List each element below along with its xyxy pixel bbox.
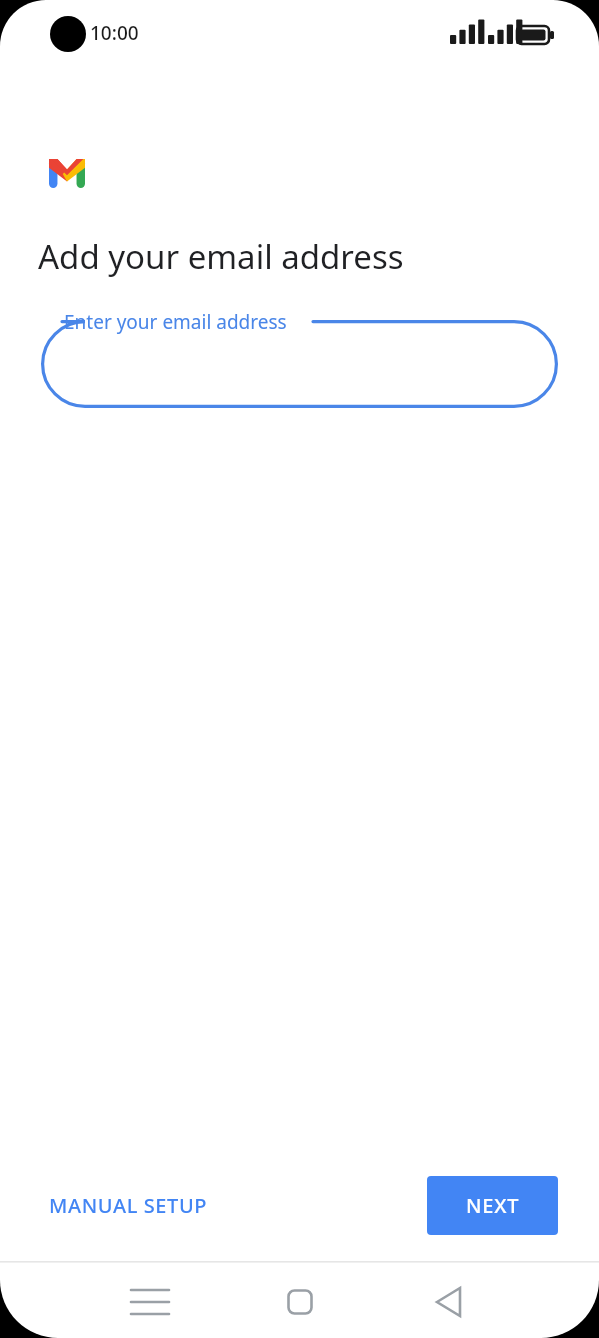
staticText: NEXT [466,1192,520,1219]
button[interactable] [41,320,558,408]
button[interactable]: Home [260,1262,340,1338]
button[interactable]: NEXT [427,1176,558,1235]
staticText: 10:00 [90,20,139,46]
staticText: MANUAL SETUP [49,1192,208,1219]
button[interactable]: Back [410,1262,490,1338]
staticText: Enter your email address [64,309,287,335]
staticText: Add your email address [38,234,404,279]
button[interactable]: MANUAL SETUP [22,1180,234,1230]
button[interactable]: Recent apps [110,1262,190,1338]
